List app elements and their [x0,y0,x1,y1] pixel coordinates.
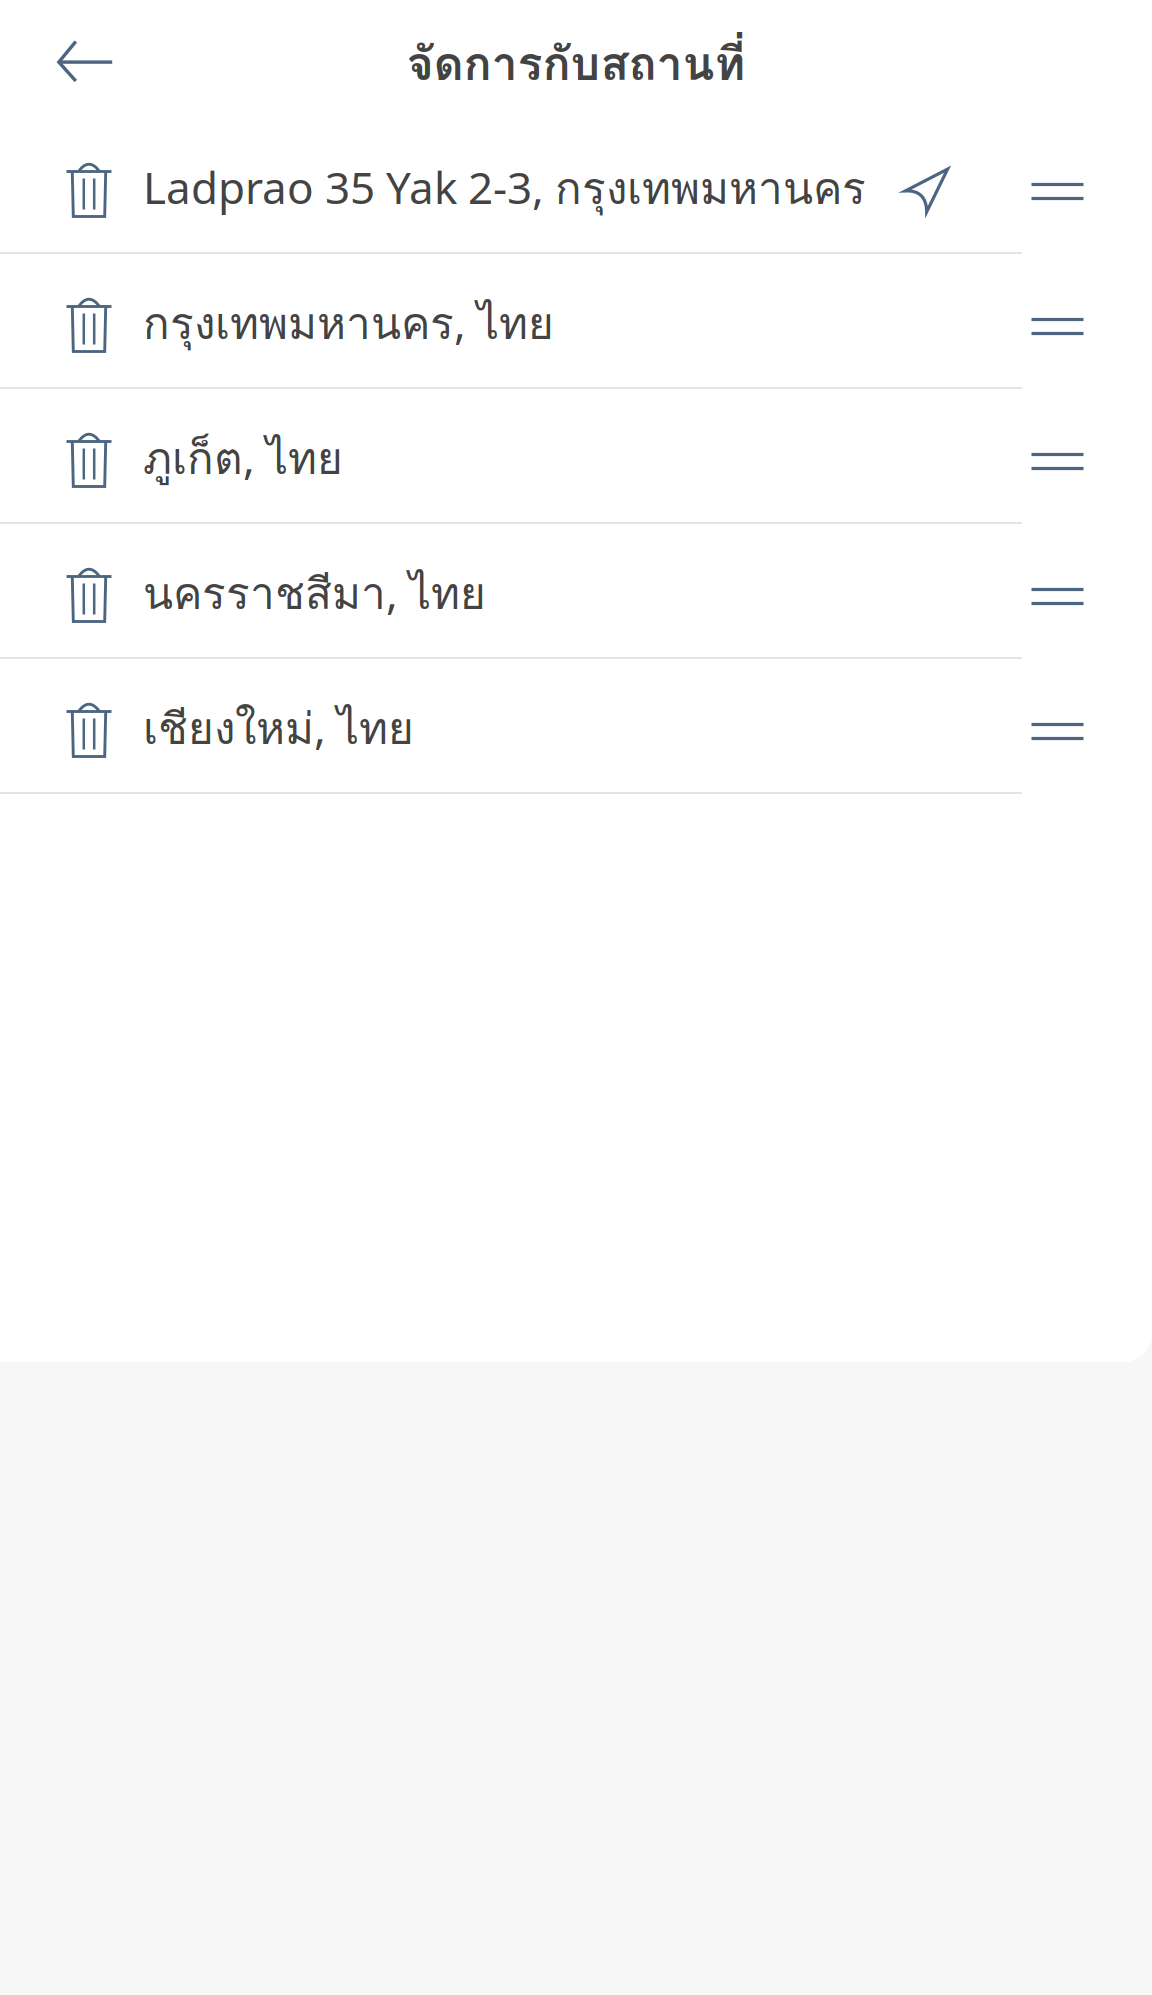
button[interactable]: Delete place [0,389,143,524]
staticText: ภูเก็ต, ไทย [143,424,343,493]
button[interactable]: Navigate here [866,119,965,254]
button[interactable]: นครราชสีมา, ไทย [143,524,486,659]
button[interactable]: Reorder [1030,659,1152,794]
staticText: Ladprao 35 Yak 2-3, กรุงเทพมหานคร [143,154,866,223]
button[interactable]: Delete place [0,659,143,794]
button[interactable]: ภูเก็ต, ไทย [143,389,343,524]
button[interactable]: กรุงเทพมหานคร, ไทย [143,254,554,389]
button[interactable]: Delete place [0,254,143,389]
button[interactable]: Reorder [1030,119,1152,254]
staticText: เชียงใหม่, ไทย [143,694,414,763]
button[interactable]: Reorder [1030,254,1152,389]
button[interactable]: Delete place [0,119,143,254]
button[interactable]: เชียงใหม่, ไทย [143,659,414,794]
staticText: จัดการกับสถานที่ [406,27,745,100]
staticText: กรุงเทพมหานคร, ไทย [143,289,554,358]
button[interactable]: Delete place [0,524,143,659]
button[interactable]: Back [0,0,170,119]
staticText: นครราชสีมา, ไทย [143,559,486,628]
button[interactable]: Reorder [1030,524,1152,659]
button[interactable]: Reorder [1030,389,1152,524]
button[interactable]: Ladprao 35 Yak 2-3, กรุงเทพมหานคร [143,119,866,254]
